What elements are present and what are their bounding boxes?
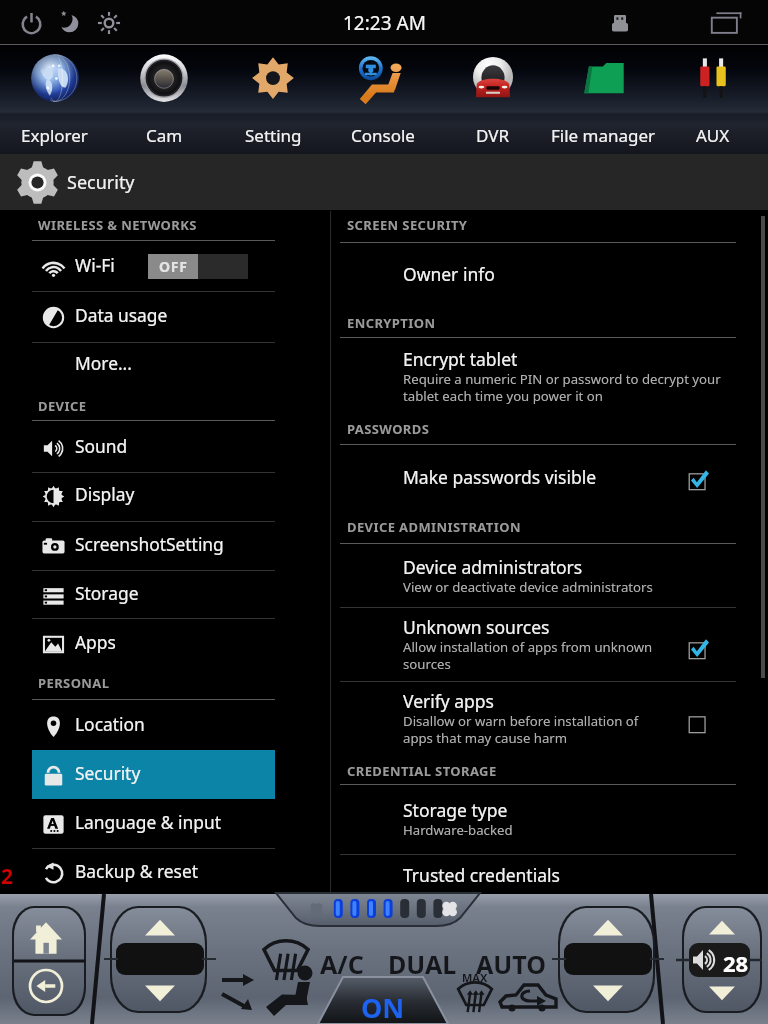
staticText: Disallow or warn before installation of … <box>403 712 639 746</box>
staticText: Apps <box>75 630 116 654</box>
button[interactable]: A/C <box>320 947 364 981</box>
staticText: ON <box>361 989 405 1024</box>
button[interactable]: Display <box>32 471 275 520</box>
button[interactable]: Explorer <box>0 45 109 154</box>
button[interactable]: Data usage <box>32 292 275 341</box>
staticText: SCREEN SECURITY <box>347 216 468 234</box>
staticText: Storage <box>75 581 139 605</box>
staticText: DEVICE ADMINISTRATION <box>347 518 521 536</box>
staticText: PASSWORDS <box>347 420 430 438</box>
button[interactable]: Night mode <box>55 8 85 38</box>
staticText: Verify apps <box>403 689 494 713</box>
button[interactable]: DVR <box>438 45 548 154</box>
staticText: File manager <box>551 124 656 147</box>
staticText: CREDENTIAL STORAGE <box>347 762 497 780</box>
staticText: ScreenshotSetting <box>75 532 224 556</box>
staticText: View or deactivate device administrators <box>403 578 653 596</box>
staticText: Console <box>351 124 415 147</box>
button[interactable]: Encrypt tablet <box>340 347 738 405</box>
button[interactable]: Power <box>16 8 46 38</box>
staticText: ENCRYPTION <box>347 314 436 332</box>
button[interactable]: Console <box>328 45 438 154</box>
button[interactable]: Unknown sources <box>676 627 720 671</box>
staticText: Make passwords visible <box>403 465 597 489</box>
button[interactable]: OFF <box>148 254 248 279</box>
button[interactable]: Brightness <box>94 8 124 38</box>
button[interactable]: Verify apps <box>676 701 720 745</box>
staticText: Setting <box>245 124 302 147</box>
button[interactable]: Backup & reset <box>32 848 275 897</box>
button[interactable]: Storage <box>32 570 275 619</box>
staticText: Wi-Fi <box>75 253 115 277</box>
staticText: 2 <box>1 862 14 891</box>
staticText: More... <box>75 351 132 375</box>
button[interactable]: USB storage <box>603 6 637 40</box>
button[interactable]: Sound <box>32 423 275 472</box>
staticText: Storage type <box>403 798 508 822</box>
button[interactable]: Owner info <box>340 262 738 286</box>
staticText: AUX <box>696 124 730 147</box>
staticText: Trusted credentials <box>403 863 560 887</box>
staticText: Unknown sources <box>403 615 550 639</box>
button[interactable]: Unknown sources <box>340 615 738 673</box>
button[interactable]: File manager <box>548 45 658 154</box>
button[interactable]: Setting <box>218 45 328 154</box>
button[interactable]: Apps <box>32 619 275 668</box>
staticText: Device administrators <box>403 555 583 579</box>
staticText: Security <box>75 761 141 785</box>
staticText: 28 <box>723 948 749 978</box>
button[interactable]: Trusted credentials <box>340 863 738 887</box>
button[interactable]: Security <box>32 750 275 799</box>
button[interactable]: Device administrators <box>340 555 738 597</box>
staticText: Encrypt tablet <box>403 347 518 371</box>
staticText: Hardware-backed <box>403 821 513 839</box>
button[interactable]: DUAL <box>388 947 457 981</box>
staticText: Location <box>75 712 145 736</box>
staticText: PERSONAL <box>38 674 110 692</box>
staticText: WIRELESS & NETWORKS <box>38 216 197 234</box>
staticText: 12:23 AM <box>343 10 426 36</box>
button[interactable]: Security <box>15 154 135 211</box>
staticText: Explorer <box>21 124 88 147</box>
button[interactable]: Storage type <box>340 798 738 840</box>
staticText: DEVICE <box>38 397 87 415</box>
staticText: DVR <box>476 124 510 147</box>
staticText: Backup & reset <box>75 859 198 883</box>
staticText: Security <box>67 170 135 195</box>
button[interactable]: AUX <box>658 45 768 154</box>
staticText: OFF <box>159 257 188 276</box>
staticText: Display <box>75 482 135 506</box>
button[interactable]: Cam <box>109 45 218 154</box>
staticText: Require a numeric PIN or password to dec… <box>403 370 721 404</box>
button[interactable]: Language & input <box>32 799 275 848</box>
staticText: MAX <box>462 970 488 985</box>
button[interactable]: ScreenshotSetting <box>32 521 275 570</box>
staticText: Cam <box>146 124 183 147</box>
staticText: Data usage <box>75 303 168 327</box>
button[interactable]: Make passwords visible <box>676 458 720 502</box>
button[interactable]: More... <box>32 340 275 389</box>
staticText: Allow installation of apps from unknown … <box>403 638 653 672</box>
button[interactable]: Verify apps <box>340 689 738 747</box>
staticText: Language & input <box>75 810 222 834</box>
button[interactable]: Wi-Fi <box>32 242 275 291</box>
staticText: Sound <box>75 434 128 458</box>
button[interactable]: Location <box>32 701 275 750</box>
staticText: Owner info <box>403 262 495 286</box>
button[interactable]: AUTO <box>476 947 546 981</box>
button[interactable]: Recent apps <box>706 2 748 44</box>
button[interactable]: Make passwords visible <box>340 465 738 509</box>
